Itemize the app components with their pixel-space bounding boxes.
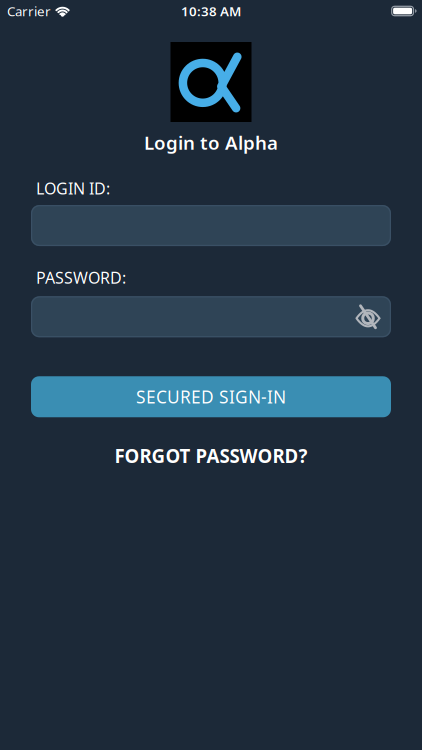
staticText: Login to Alpha	[144, 130, 278, 155]
button[interactable]	[31, 296, 391, 337]
button[interactable]: FORGOT PASSWORD?	[114, 443, 307, 468]
staticText: 10:38 AM	[181, 2, 241, 20]
staticText: LOGIN ID:	[36, 178, 110, 199]
staticText: PASSWORD:	[36, 267, 126, 288]
button[interactable]	[355, 305, 381, 329]
staticText: SECURED SIGN-IN	[136, 385, 286, 408]
staticText: Carrier	[7, 2, 51, 20]
button[interactable]	[0, 205, 422, 246]
staticText: FORGOT PASSWORD?	[114, 443, 307, 468]
button[interactable]: SECURED SIGN-IN	[0, 376, 422, 417]
